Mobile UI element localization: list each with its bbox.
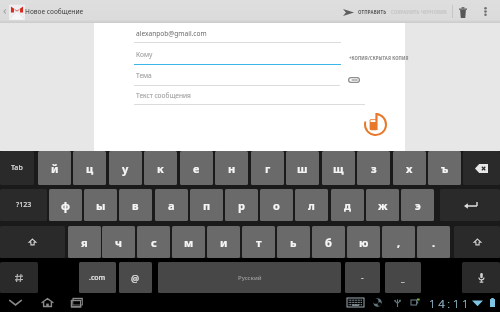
button[interactable]: у: [109, 151, 142, 185]
button[interactable]: с: [137, 226, 170, 258]
button[interactable]: Backspace: [463, 151, 500, 185]
button[interactable]: а: [155, 189, 188, 221]
staticText: +КОПИЯ/СКРЫТАЯ КОПИЯ: [349, 55, 409, 61]
staticText: е: [193, 161, 200, 176]
staticText: ю: [359, 235, 369, 250]
staticText: Тема: [136, 71, 152, 80]
button[interactable]: [134, 26, 341, 44]
staticText: у: [122, 161, 129, 176]
button[interactable]: Back: [0, 3, 27, 20]
button[interactable]: ,: [382, 226, 415, 258]
button[interactable]: СОХРАНИТЬ ЧЕРНОВИК: [391, 1, 448, 23]
staticText: н: [228, 161, 236, 176]
button[interactable]: ю: [347, 226, 380, 258]
staticText: ш: [297, 161, 308, 176]
staticText: Новое сообщение: [25, 7, 84, 16]
button[interactable]: Tab: [0, 151, 34, 185]
staticText: т: [256, 235, 262, 250]
staticText: 14:11: [429, 296, 472, 312]
staticText: Текст сообщения: [136, 91, 191, 100]
button[interactable]: Back: [5, 293, 26, 312]
button[interactable]: ь: [277, 226, 310, 258]
staticText: _: [401, 272, 405, 283]
button[interactable]: ОТПРАВИТЬ: [343, 1, 390, 23]
button[interactable]: ф: [49, 189, 82, 221]
button[interactable]: ц: [73, 151, 106, 185]
staticText: й: [51, 161, 59, 176]
button[interactable]: -: [345, 262, 380, 293]
staticText: с: [151, 235, 157, 250]
button[interactable]: Home: [38, 293, 57, 312]
button[interactable]: Delete: [456, 5, 470, 19]
staticText: р: [238, 198, 245, 213]
button[interactable]: ы: [84, 189, 117, 221]
staticText: ы: [96, 198, 106, 213]
button[interactable]: я: [68, 226, 101, 258]
staticText: ОТПРАВИТЬ: [358, 9, 387, 15]
button[interactable]: э: [401, 189, 434, 221]
button[interactable]: м: [172, 226, 205, 258]
button[interactable]: й: [38, 151, 71, 185]
button[interactable]: л: [295, 189, 328, 221]
button[interactable]: Voice input: [462, 262, 500, 293]
button[interactable]: +КОПИЯ/СКРЫТАЯ КОПИЯ: [347, 53, 411, 63]
staticText: .: [432, 235, 436, 250]
staticText: и: [220, 235, 228, 250]
button[interactable]: в: [119, 189, 152, 221]
staticText: а: [168, 198, 175, 213]
button[interactable]: ш: [286, 151, 319, 185]
button[interactable]: .: [417, 226, 450, 258]
staticText: з: [371, 161, 377, 176]
staticText: х: [406, 161, 413, 176]
staticText: ь: [290, 235, 297, 250]
button[interactable]: щ: [322, 151, 355, 185]
button[interactable]: Shift: [0, 226, 65, 258]
button[interactable]: ъ: [428, 151, 461, 185]
button[interactable]: [134, 47, 341, 65]
staticText: г: [265, 161, 271, 176]
button[interactable]: ч: [102, 226, 135, 258]
staticText: щ: [333, 161, 344, 176]
staticText: ч: [115, 235, 123, 250]
button[interactable]: д: [331, 189, 364, 221]
button[interactable]: п: [190, 189, 223, 221]
staticText: -: [361, 272, 364, 283]
staticText: Tab: [11, 163, 23, 173]
button[interactable]: и: [207, 226, 240, 258]
staticText: СОХРАНИТЬ ЧЕРНОВИК: [391, 9, 448, 15]
staticText: м: [184, 235, 194, 250]
button[interactable]: о: [260, 189, 293, 221]
staticText: я: [81, 235, 88, 250]
button[interactable]: б: [312, 226, 345, 258]
button[interactable]: Recent apps: [68, 293, 87, 312]
button[interactable]: н: [215, 151, 248, 185]
button[interactable]: Shift: [454, 226, 500, 258]
button[interactable]: Attach file: [346, 74, 362, 86]
staticText: л: [308, 198, 315, 213]
button[interactable]: @: [119, 262, 152, 293]
staticText: alexanpob@gmail.com: [136, 29, 207, 38]
button[interactable]: з: [357, 151, 390, 185]
button[interactable]: ?123: [0, 189, 47, 221]
staticText: ъ: [441, 161, 449, 176]
button[interactable]: [134, 68, 340, 86]
button[interactable]: х: [393, 151, 426, 185]
button[interactable]: г: [251, 151, 284, 185]
button[interactable]: е: [180, 151, 213, 185]
button[interactable]: т: [242, 226, 275, 258]
staticText: к: [157, 161, 164, 176]
button[interactable]: к: [144, 151, 177, 185]
staticText: п: [203, 198, 211, 213]
button[interactable]: More options: [479, 5, 492, 18]
staticText: э: [415, 198, 421, 213]
button[interactable]: .com: [79, 262, 116, 293]
button[interactable]: [134, 88, 365, 106]
button[interactable]: _: [385, 262, 421, 293]
staticText: ,: [397, 235, 401, 250]
button[interactable]: Enter: [440, 189, 500, 221]
button[interactable]: Русский: [158, 262, 341, 293]
button[interactable]: р: [225, 189, 258, 221]
button[interactable]: Settings: [0, 262, 38, 293]
button[interactable]: ж: [366, 189, 399, 221]
staticText: ц: [86, 161, 94, 176]
